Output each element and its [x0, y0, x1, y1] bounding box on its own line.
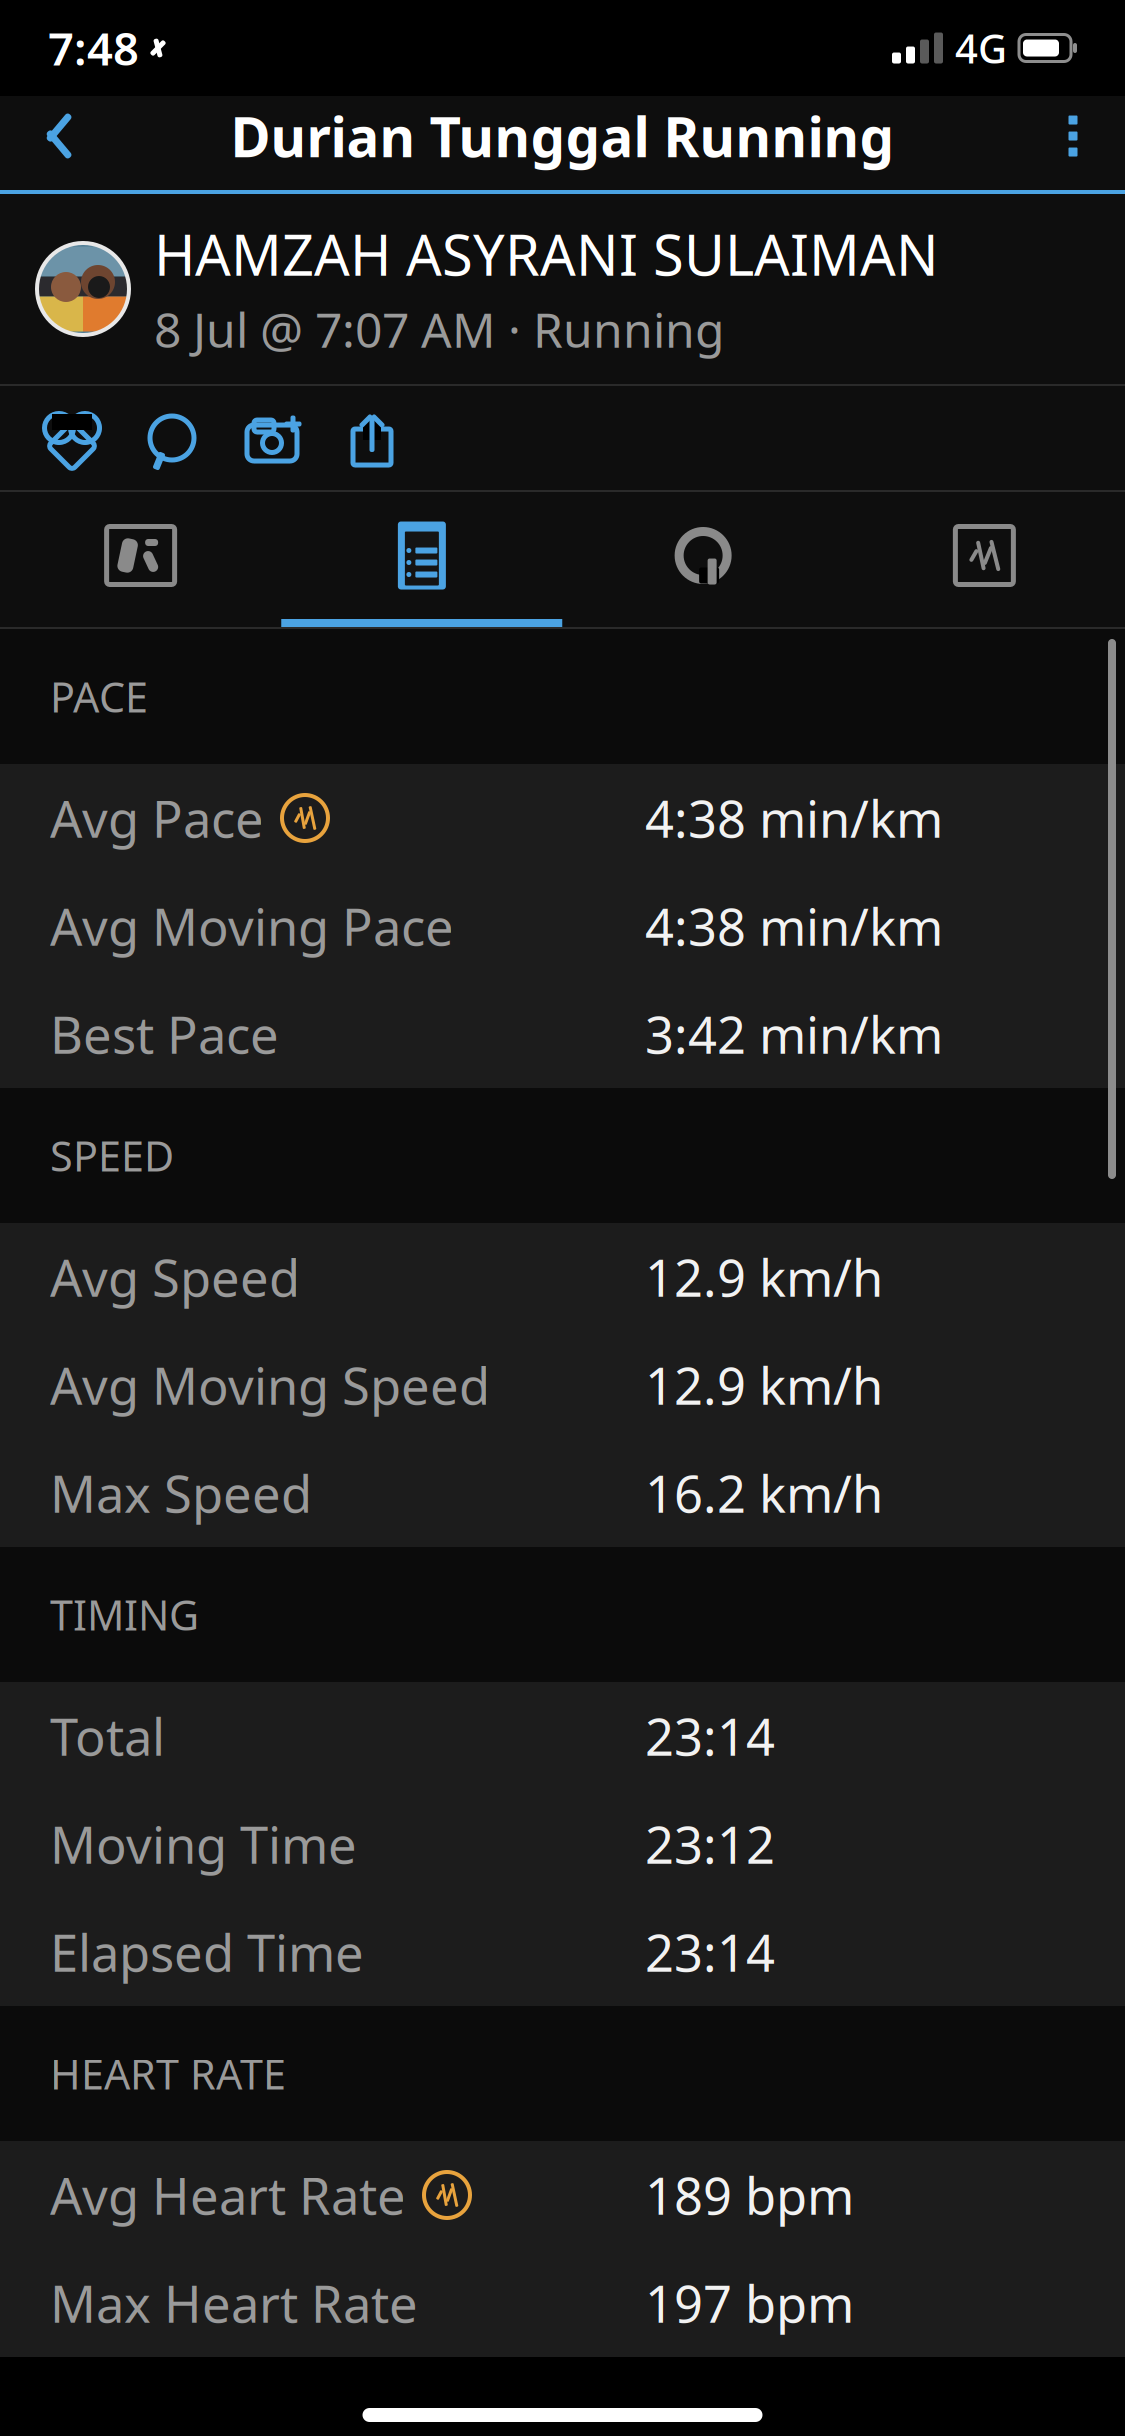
- staticText: HAMZAH ASYRANI SULAIMAN: [154, 217, 939, 291]
- staticText: Durian Tunggal Running: [230, 100, 894, 172]
- button[interactable]: Details: [281, 492, 562, 627]
- button[interactable]: Best Pace: [0, 980, 1125, 1088]
- staticText: PACE: [50, 669, 148, 724]
- button[interactable]: Share: [322, 388, 422, 488]
- staticText: 4G: [955, 21, 1007, 74]
- staticText: Avg Speed: [50, 1243, 300, 1311]
- staticText: 23:14: [645, 1918, 775, 1986]
- staticText: Avg Heart Rate: [50, 2161, 406, 2229]
- button[interactable]: Elapsed Time: [0, 1898, 1125, 2006]
- staticText: 8 Jul @ 7:07 AM · Running: [154, 297, 725, 361]
- button[interactable]: Comment: [122, 388, 222, 488]
- button[interactable]: Charts: [844, 492, 1125, 627]
- staticText: 12.9 km/h: [645, 1351, 883, 1419]
- button[interactable]: Max Heart Rate: [0, 2249, 1125, 2357]
- staticText: SPEED: [50, 1128, 174, 1183]
- staticText: 197 bpm: [645, 2269, 854, 2337]
- button[interactable]: Avg Pace: [0, 764, 1125, 872]
- button[interactable]: Avg Heart Rate: [0, 2141, 1125, 2249]
- button[interactable]: Like: [22, 388, 122, 488]
- staticText: 189 bpm: [645, 2161, 854, 2229]
- button[interactable]: Avg Moving Pace: [0, 872, 1125, 980]
- staticText: 23:12: [645, 1810, 775, 1878]
- button[interactable]: Back: [22, 100, 82, 172]
- staticText: Avg Moving Pace: [50, 892, 454, 960]
- staticText: 12.9 km/h: [645, 1243, 883, 1311]
- button[interactable]: Laps: [562, 492, 844, 627]
- staticText: 3:42 min/km: [645, 1000, 943, 1068]
- staticText: HEART RATE: [50, 2046, 286, 2101]
- staticText: 23:14: [645, 1702, 775, 1770]
- staticText: Max Heart Rate: [50, 2269, 418, 2337]
- staticText: Max Speed: [50, 1459, 312, 1527]
- button[interactable]: Avg Moving Speed: [0, 1331, 1125, 1439]
- button[interactable]: Avg Speed: [0, 1223, 1125, 1331]
- staticText: Best Pace: [50, 1000, 279, 1068]
- button[interactable]: Total: [0, 1682, 1125, 1790]
- button[interactable]: More options: [1043, 100, 1103, 172]
- staticText: Avg Pace: [50, 784, 264, 852]
- button[interactable]: Moving Time: [0, 1790, 1125, 1898]
- staticText: Avg Moving Speed: [50, 1351, 490, 1419]
- staticText: 4:38 min/km: [645, 892, 943, 960]
- button[interactable]: Add photo: [222, 388, 322, 488]
- staticText: 16.2 km/h: [645, 1459, 883, 1527]
- staticText: 4:38 min/km: [645, 784, 943, 852]
- staticText: Moving Time: [50, 1810, 357, 1878]
- button[interactable]: Map: [0, 492, 281, 627]
- button[interactable]: Max Speed: [0, 1439, 1125, 1547]
- staticText: TIMING: [50, 1587, 199, 1642]
- staticText: Elapsed Time: [50, 1918, 364, 1986]
- staticText: Total: [50, 1702, 165, 1770]
- staticText: 7:48: [48, 18, 139, 78]
